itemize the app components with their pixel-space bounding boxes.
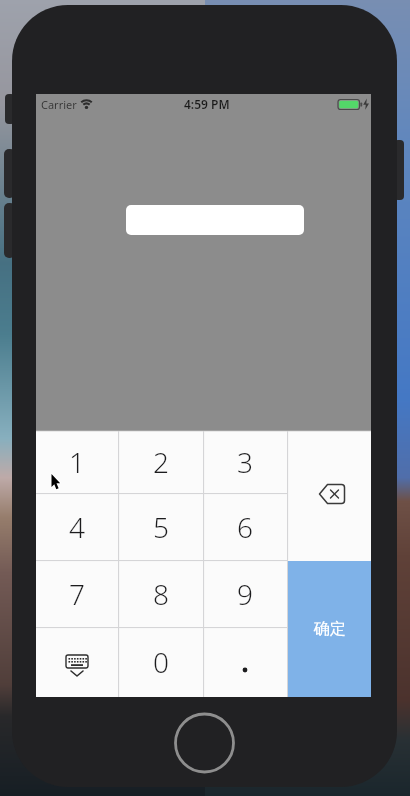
button[interactable] xyxy=(203,627,287,697)
button[interactable] xyxy=(288,431,371,561)
button[interactable]: 确定 xyxy=(288,561,371,697)
button[interactable] xyxy=(36,627,118,697)
staticText: 8 xyxy=(153,575,169,613)
staticText: 9 xyxy=(237,575,253,613)
button[interactable]: 0 xyxy=(118,627,203,697)
button[interactable]: 6 xyxy=(203,493,287,560)
button[interactable]: 5 xyxy=(118,493,203,560)
button[interactable]: 2 xyxy=(118,430,203,493)
staticText: 4:59 PM xyxy=(184,96,230,112)
button[interactable]: 4 xyxy=(36,493,118,560)
button[interactable]: 8 xyxy=(118,560,203,627)
button[interactable]: 1 xyxy=(36,430,118,493)
staticText: 7 xyxy=(69,575,85,613)
staticText: 5 xyxy=(153,508,169,546)
button[interactable]: 9 xyxy=(203,560,287,627)
staticText: 确定 xyxy=(314,619,346,639)
staticText: Carrier xyxy=(41,97,77,112)
button[interactable] xyxy=(126,205,304,235)
staticText: 2 xyxy=(153,443,169,481)
staticText: 1 xyxy=(69,443,85,481)
button[interactable]: 3 xyxy=(203,430,287,493)
button[interactable]: 7 xyxy=(36,560,118,627)
staticText: 6 xyxy=(237,508,253,546)
staticText: 0 xyxy=(153,643,169,681)
staticText: 3 xyxy=(237,443,253,481)
staticText: 4 xyxy=(69,508,85,546)
